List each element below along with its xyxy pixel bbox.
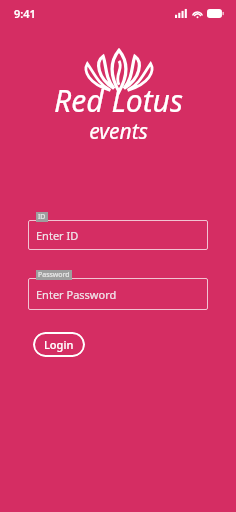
staticText: Enter ID (36, 228, 79, 243)
staticText: ID (38, 212, 46, 222)
staticText: events (89, 117, 148, 146)
staticText: Login (44, 337, 74, 352)
staticText: 9:41 (14, 6, 36, 21)
button[interactable]: Enter ID (28, 220, 208, 250)
button[interactable]: Login (33, 332, 85, 357)
staticText: Red Lotus (54, 80, 183, 121)
button[interactable]: Enter Password (28, 278, 208, 310)
staticText: Enter Password (36, 287, 117, 302)
staticText: Password (38, 270, 70, 280)
